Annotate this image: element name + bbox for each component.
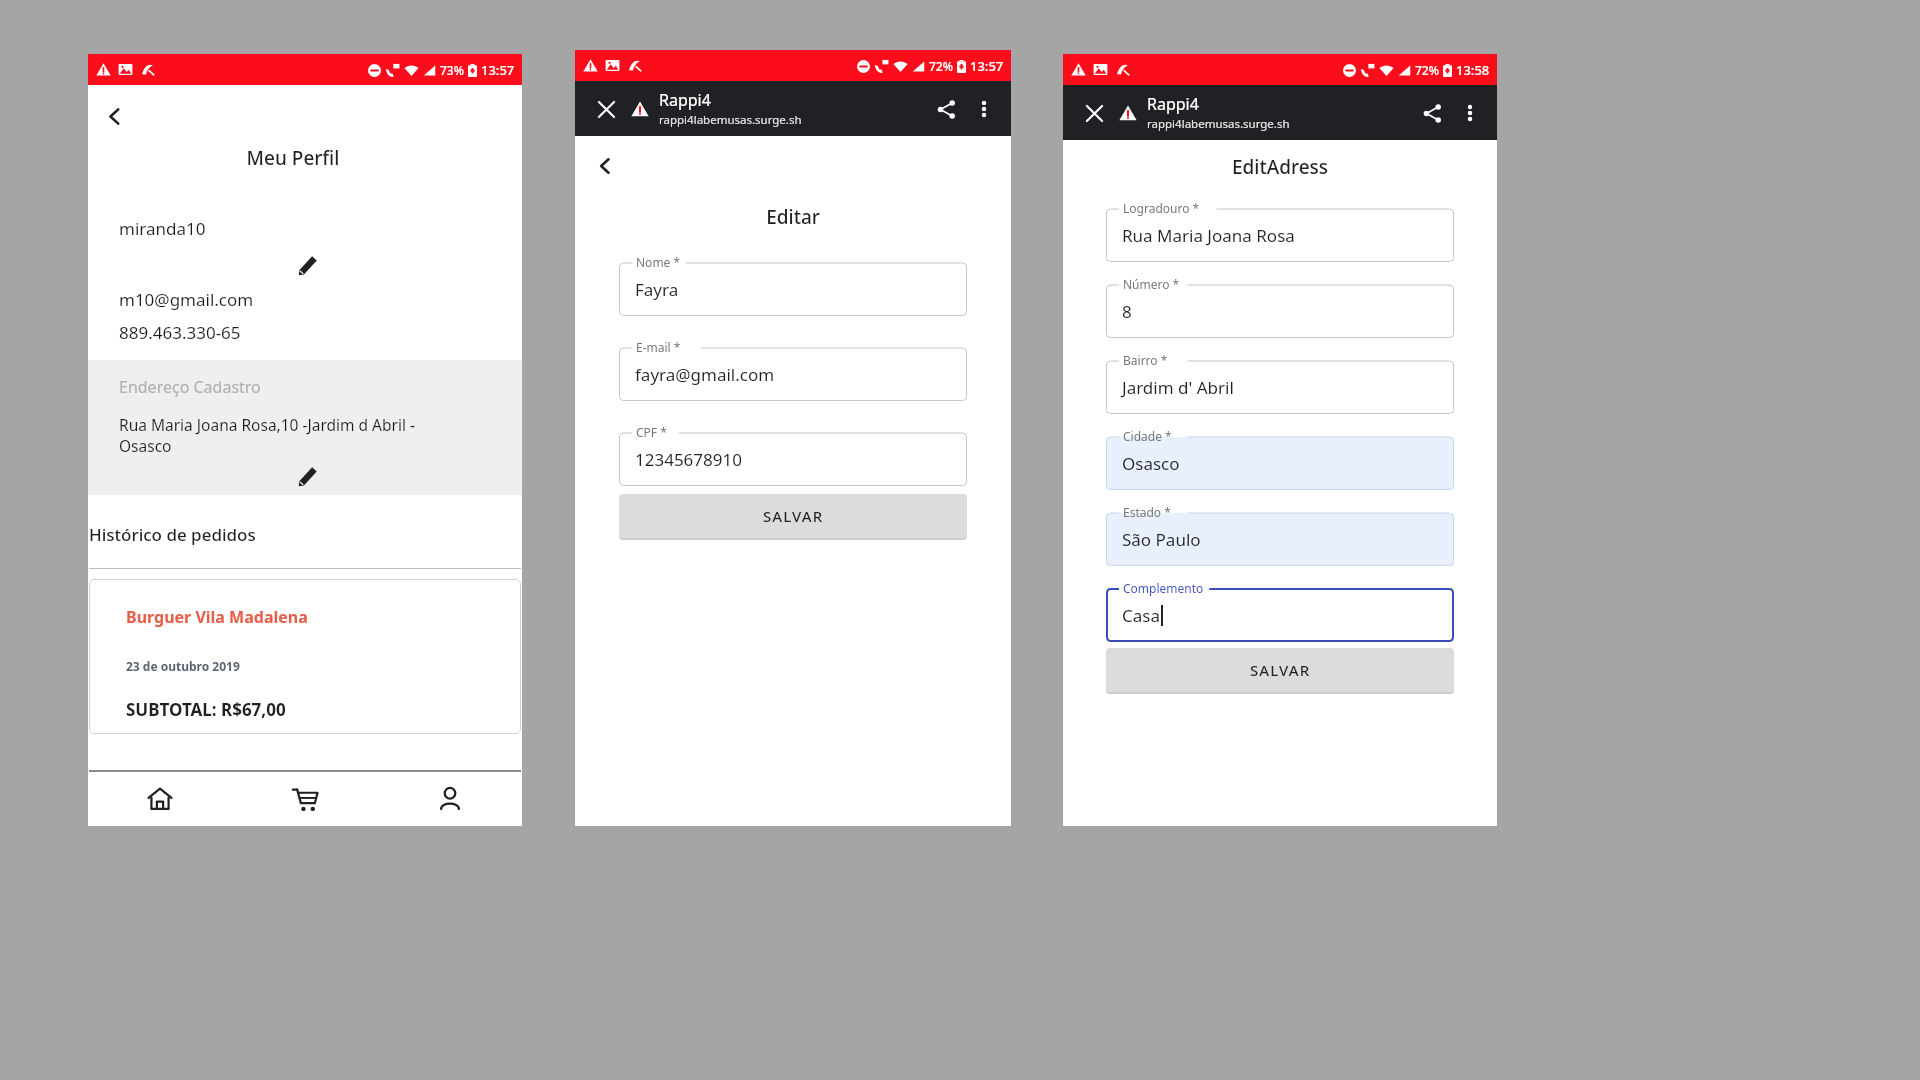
button[interactable]: More options (1451, 94, 1489, 132)
button[interactable]: Cart (232, 772, 377, 826)
staticText: 72% (929, 58, 953, 74)
staticText: 12345678910 (635, 448, 742, 471)
staticText: Editar (575, 204, 1011, 230)
staticText: 72% (1415, 62, 1439, 78)
button[interactable]: Close (589, 92, 623, 126)
button[interactable]: Profile (377, 772, 522, 826)
staticText: Rappi4 (659, 89, 711, 111)
staticText: E-mail * (636, 339, 681, 355)
staticText: São Paulo (1122, 528, 1201, 551)
button[interactable]: Nome * (619, 254, 967, 316)
button[interactable]: Back (106, 97, 144, 135)
button[interactable]: Burguer Vila Madalena (89, 579, 521, 734)
button[interactable]: Share (927, 90, 965, 128)
button[interactable]: SALVAR (619, 494, 967, 538)
staticText: fayra@gmail.com (635, 363, 775, 386)
staticText: Fayra (635, 278, 679, 301)
button[interactable]: Share (1413, 94, 1451, 132)
staticText: Complemento (1123, 580, 1204, 596)
staticText: Logradouro * (1123, 200, 1200, 216)
staticText: SALVAR (763, 506, 824, 526)
staticText: Osasco (1122, 452, 1180, 475)
button[interactable]: Número * (1106, 276, 1454, 338)
staticText: Cidade * (1123, 428, 1172, 444)
button[interactable]: Close (1077, 96, 1111, 130)
staticText: 889.463.330-65 (119, 321, 241, 344)
staticText: Bairro * (1123, 352, 1168, 368)
staticText: Histórico de pedidos (89, 523, 256, 546)
staticText: Estado * (1123, 504, 1171, 520)
staticText: Nome * (636, 254, 681, 270)
staticText: Burguer Vila Madalena (126, 606, 308, 628)
button[interactable]: Estado * (1106, 504, 1454, 566)
staticText: 23 de outubro 2019 (126, 658, 240, 674)
staticText: rappi4labemusas.surge.sh (659, 112, 802, 128)
staticText: Jardim d' Abril (1122, 376, 1234, 399)
staticText: Endereço Cadastro (119, 376, 261, 398)
staticText: SUBTOTAL: R$67,00 (126, 698, 286, 721)
button[interactable]: Logradouro * (1106, 200, 1454, 262)
staticText: SALVAR (1250, 660, 1311, 680)
button[interactable]: Edit profile (88, 252, 522, 278)
staticText: m10@gmail.com (119, 288, 254, 311)
staticText: miranda10 (119, 217, 206, 240)
staticText: Número * (1123, 276, 1180, 292)
staticText: rappi4labemusas.surge.sh (1147, 116, 1290, 132)
staticText: Casa (1122, 604, 1160, 627)
button[interactable]: Cidade * (1106, 428, 1454, 490)
staticText: CPF * (636, 424, 667, 440)
staticText: 13:57 (481, 61, 515, 79)
button[interactable]: E-mail * (619, 339, 967, 401)
button[interactable]: Home (88, 772, 232, 826)
button[interactable]: SALVAR (1106, 648, 1454, 692)
staticText: EditAdress (1063, 154, 1497, 180)
staticText: 13:58 (1456, 61, 1490, 79)
button[interactable]: CPF * (619, 424, 967, 486)
button[interactable]: More options (965, 90, 1003, 128)
staticText: 8 (1122, 300, 1132, 323)
button[interactable]: Bairro * (1106, 352, 1454, 414)
staticText: Rua Maria Joana Rosa,10 -Jardim d Abril … (119, 414, 415, 457)
staticText: Rappi4 (1147, 93, 1199, 115)
staticText: 13:57 (970, 57, 1004, 75)
staticText: Rua Maria Joana Rosa (1122, 224, 1295, 247)
staticText: Meu Perfil (88, 145, 498, 171)
button[interactable]: Edit address (88, 463, 522, 489)
staticText: 73% (440, 62, 464, 78)
button[interactable]: Back (597, 148, 633, 184)
button[interactable]: Complemento (1106, 580, 1454, 642)
